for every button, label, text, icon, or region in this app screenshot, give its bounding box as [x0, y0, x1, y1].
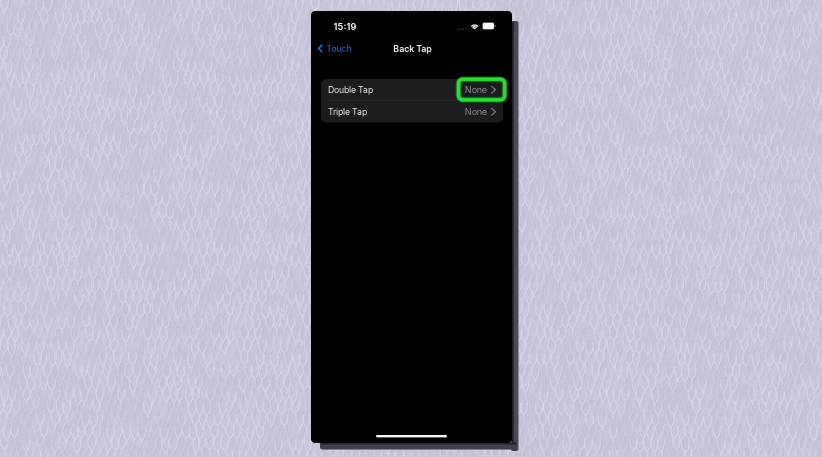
staticText: Triple Tap	[328, 106, 367, 117]
staticText: Back Tap	[393, 44, 431, 54]
staticText: Double Tap	[328, 84, 373, 95]
staticText: None	[465, 84, 487, 95]
button[interactable]: Double Tap	[321, 79, 503, 100]
staticText: None	[465, 106, 487, 117]
staticText: Touch	[326, 43, 351, 54]
staticText: 15:19	[334, 21, 357, 32]
button[interactable]: Triple Tap	[321, 101, 503, 122]
button[interactable]: Touch	[316, 40, 353, 57]
